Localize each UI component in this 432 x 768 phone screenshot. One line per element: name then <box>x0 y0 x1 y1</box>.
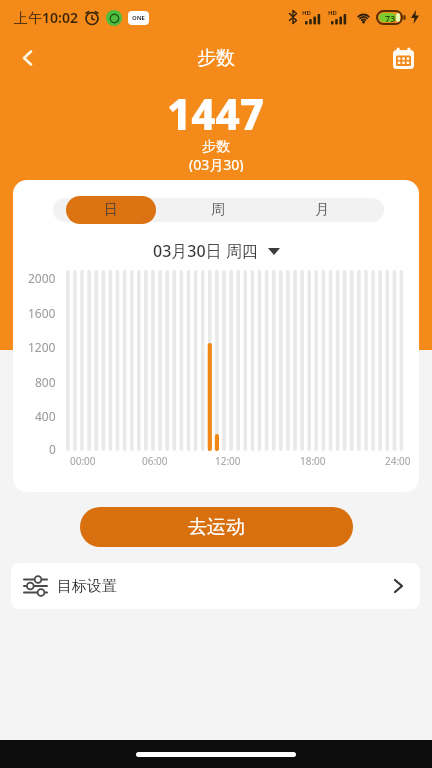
staticText: HD <box>328 9 337 17</box>
button[interactable]: 03月30日 周四 <box>13 240 419 262</box>
staticText: 1600 <box>28 305 56 321</box>
staticText: 月 <box>315 201 329 219</box>
staticText: 1200 <box>28 339 56 355</box>
button[interactable] <box>10 40 46 76</box>
staticText: 步数 <box>202 138 230 156</box>
staticText: 24:00 <box>385 454 411 468</box>
staticText: 日 <box>104 201 118 219</box>
button[interactable] <box>386 41 420 75</box>
staticText: 06:00 <box>142 454 168 468</box>
staticText: 0 <box>49 441 56 457</box>
staticText: 18:00 <box>300 454 326 468</box>
staticText: 目标设置 <box>57 577 117 596</box>
staticText: (03月30) <box>189 155 244 172</box>
staticText: 00:00 <box>70 454 96 468</box>
staticText: ONE <box>132 14 145 22</box>
staticText: 800 <box>35 374 56 390</box>
button[interactable]: 去运动 <box>80 507 353 547</box>
staticText: 12:00 <box>215 454 241 468</box>
staticText: 步数 <box>197 46 235 70</box>
staticText: 2000 <box>28 270 56 286</box>
staticText: 400 <box>35 408 56 424</box>
staticText: 去运动 <box>188 515 245 539</box>
staticText: 周 <box>211 201 225 219</box>
staticText: 03月30日 周四 <box>153 240 258 262</box>
staticText: 1447 <box>167 85 265 134</box>
button[interactable]: 日 <box>66 196 156 224</box>
staticText: 73 <box>385 12 396 24</box>
staticText: 上午10:02 <box>14 8 78 27</box>
button[interactable]: 目标设置 <box>11 563 420 609</box>
button[interactable]: 月 <box>267 196 377 224</box>
button[interactable]: 周 <box>163 196 273 224</box>
staticText: HD <box>302 9 311 17</box>
